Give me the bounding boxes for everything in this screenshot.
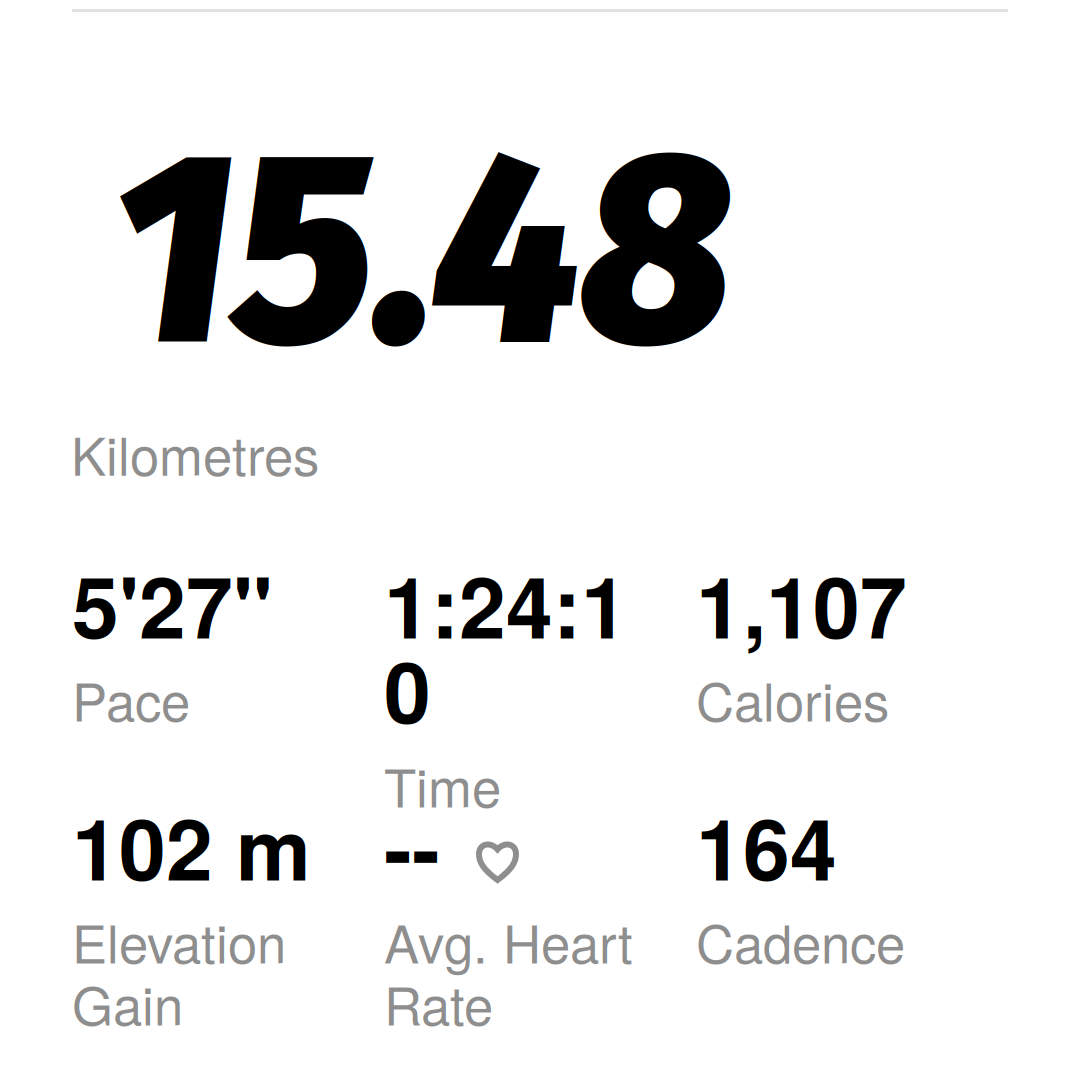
button[interactable]: 102 m — [72, 786, 384, 1041]
staticText: Avg. Heart — [384, 903, 633, 978]
button[interactable]: 1:24:1 — [384, 544, 696, 823]
staticText: 1:24:1 — [384, 544, 628, 664]
staticText: 1,107 — [696, 544, 907, 664]
button[interactable]: 164 — [696, 786, 1008, 979]
staticText: -- — [384, 786, 440, 906]
staticText: Elevation — [72, 903, 286, 978]
staticText: Pace — [72, 661, 190, 736]
button[interactable]: 15.48 — [72, 95, 1008, 499]
staticText: Gain — [72, 965, 183, 1040]
staticText: 15.48 — [111, 96, 732, 406]
staticText: 0 — [384, 629, 431, 749]
staticText: 164 — [696, 786, 837, 906]
button[interactable]: 5'27" — [72, 544, 384, 737]
staticText: Kilometres — [71, 415, 319, 491]
staticText: Time — [384, 747, 501, 822]
staticText: 5'27" — [72, 544, 273, 664]
button[interactable]: -- — [384, 786, 696, 1041]
staticText: Calories — [696, 661, 889, 736]
staticText: Rate — [384, 965, 493, 1040]
staticText: 102 m — [72, 786, 311, 906]
staticText: Cadence — [696, 903, 905, 978]
button[interactable]: 1,107 — [696, 544, 1008, 737]
